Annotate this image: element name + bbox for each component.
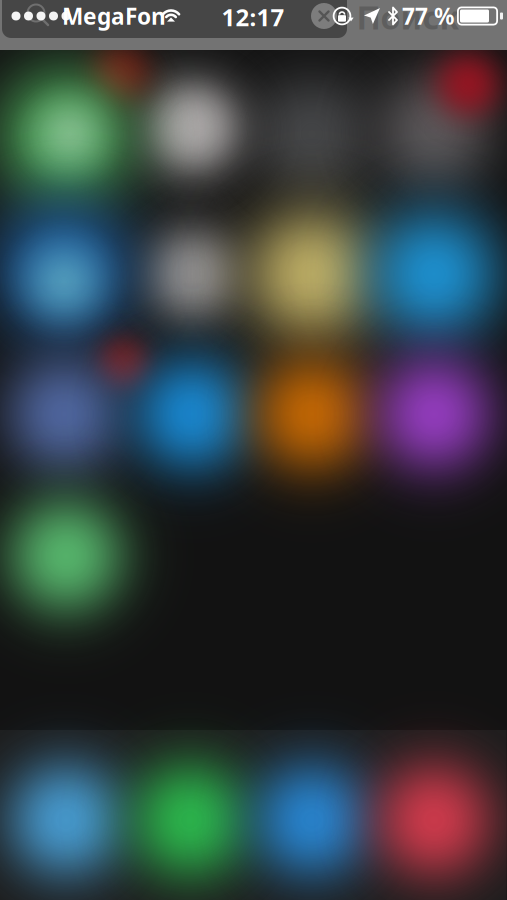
button[interactable]: Clear search — [309, 1, 339, 31]
staticText: MegaFon — [62, 1, 166, 31]
staticText: Поиск — [356, 0, 459, 38]
staticText: 12:17 — [221, 1, 284, 33]
staticText: 77 % — [402, 1, 454, 31]
